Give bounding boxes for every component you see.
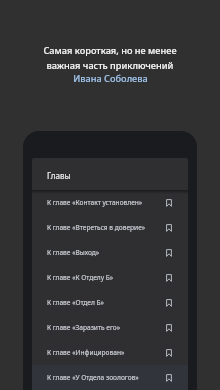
staticText: Самая короткая, но не менее важная часть…	[43, 44, 177, 72]
other: Bookmark	[164, 273, 174, 283]
staticText: К главе «Инфицирован»	[47, 348, 164, 357]
staticText: Ивана Соболева	[73, 72, 148, 85]
staticText: К главе «К Отделу Б»	[47, 273, 164, 282]
button[interactable]: К главе «Выход»	[32, 240, 188, 265]
other: Bookmark	[164, 323, 174, 333]
staticText: К главе «У Отдела зоологов»	[47, 373, 164, 382]
staticText: К главе «Контакт установлен»	[47, 198, 164, 207]
staticText: К главе «Отдел Б»	[47, 298, 164, 307]
staticText: Главы	[47, 170, 71, 181]
button[interactable]: К главе «Втереться в доверие»	[32, 215, 188, 240]
staticText: К главе «Выход»	[47, 248, 164, 257]
button[interactable]: К главе «Контакт установлен»	[32, 190, 188, 215]
other: Bookmark	[164, 348, 174, 358]
other: Bookmark	[164, 223, 174, 233]
other: Bookmark	[164, 298, 174, 308]
other: Bookmark	[164, 198, 174, 208]
other: Bookmark	[164, 373, 174, 383]
button[interactable]: К главе «Инфицирован»	[32, 340, 188, 365]
staticText: К главе «Заразить его»	[47, 323, 164, 332]
other: Bookmark	[164, 248, 174, 258]
button[interactable]: К главе «Отдел Б»	[32, 290, 188, 315]
button[interactable]: К главе «У Отдела зоологов»	[32, 365, 188, 390]
button[interactable]: К главе «К Отделу Б»	[32, 265, 188, 290]
button[interactable]: К главе «Заразить его»	[32, 315, 188, 340]
staticText: К главе «Втереться в доверие»	[47, 223, 164, 232]
